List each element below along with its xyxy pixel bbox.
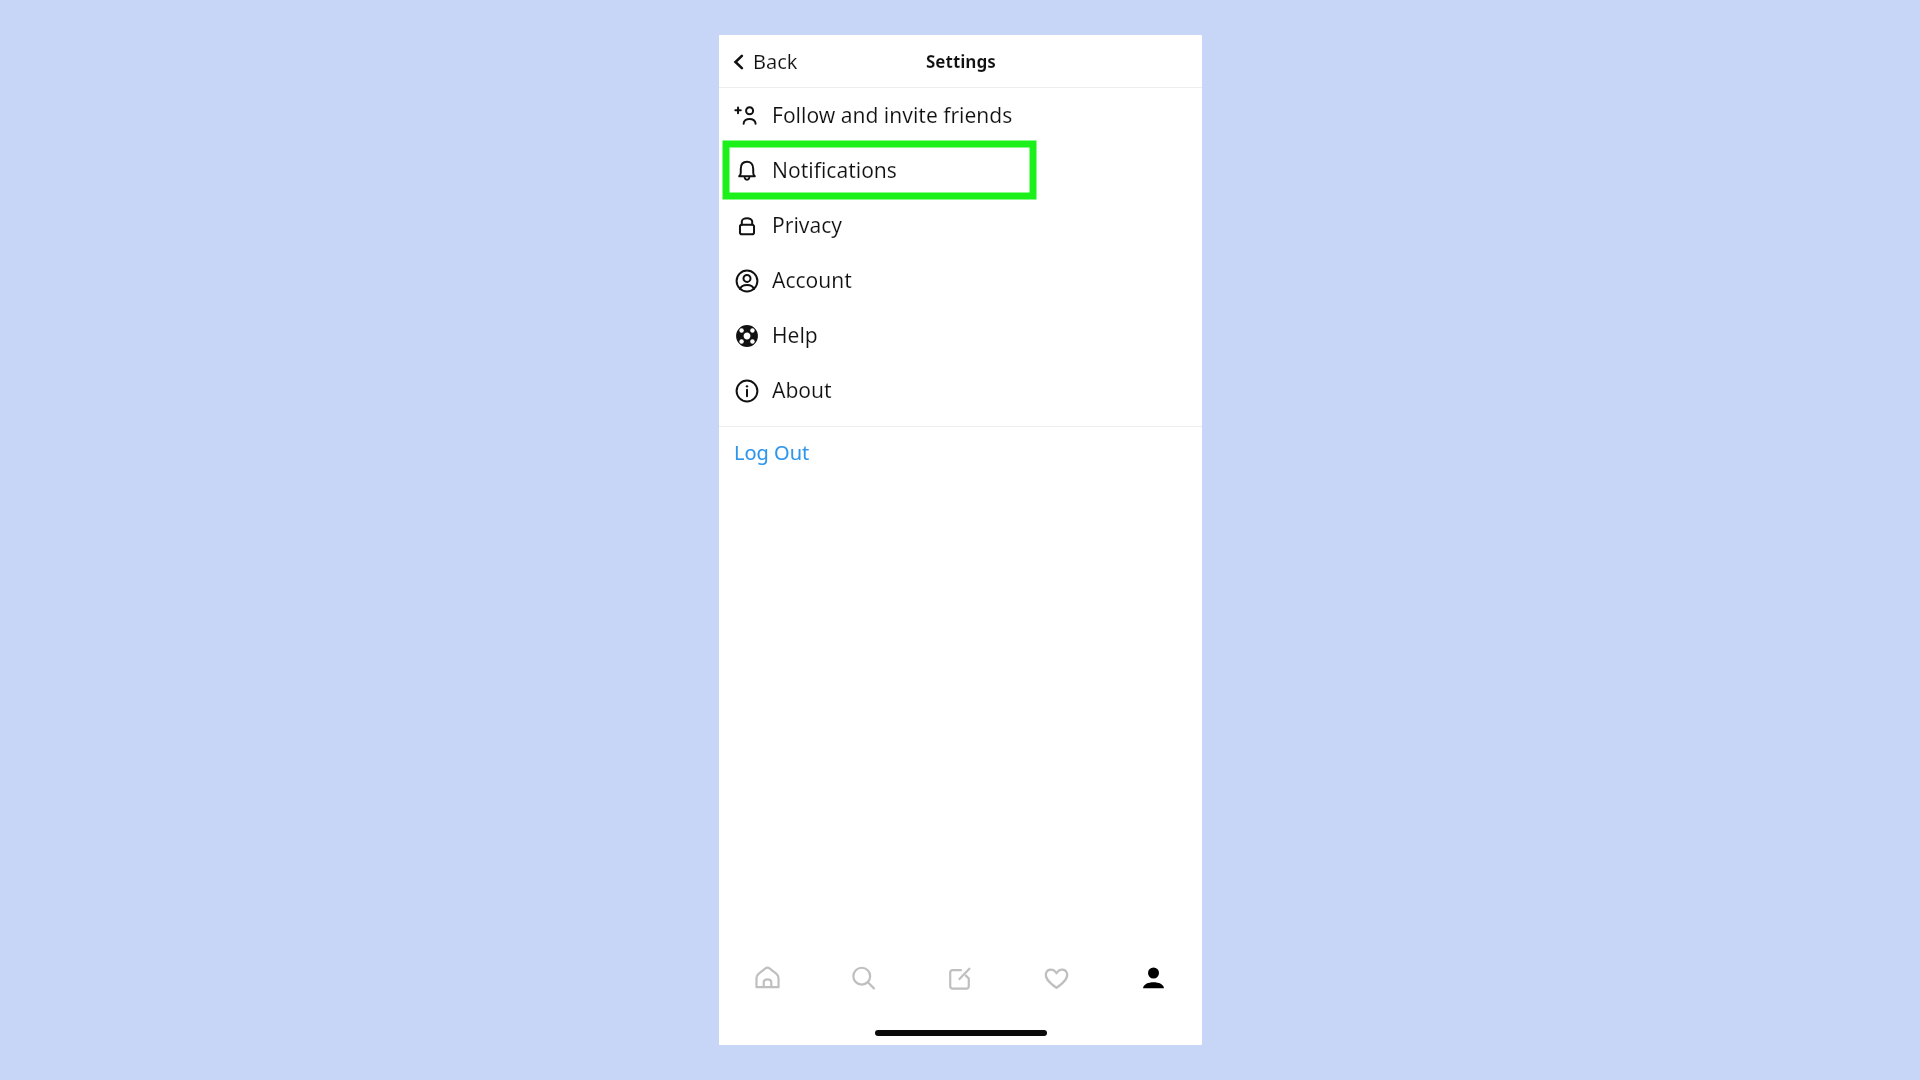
button[interactable]: Compose [911,947,1008,1009]
button[interactable]: Profile [1105,947,1202,1009]
staticText: Settings [926,50,996,73]
staticText: Account [772,266,852,295]
button[interactable]: Activity [1008,947,1105,1009]
button[interactable]: Follow and invite friends [719,88,1202,143]
button[interactable]: Back [731,48,798,75]
button[interactable]: Notifications [719,143,1202,198]
button[interactable]: About [719,363,1202,418]
button[interactable]: Home [719,947,815,1009]
staticText: Privacy [772,211,843,240]
staticText: Follow and invite friends [772,101,1013,130]
staticText: Help [772,321,818,350]
button[interactable]: Account [719,253,1202,308]
staticText: Notifications [772,156,897,185]
staticText: Log Out [734,439,810,466]
button[interactable]: Help [719,308,1202,363]
button[interactable]: Search [815,947,911,1009]
button[interactable]: Log Out [719,427,1202,477]
button[interactable]: Privacy [719,198,1202,253]
staticText: Back [753,48,798,75]
staticText: About [772,376,832,405]
